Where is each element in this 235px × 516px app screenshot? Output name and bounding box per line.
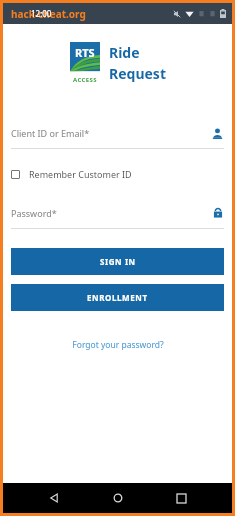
staticText: RTS [75, 45, 95, 60]
staticText: Client ID or Email* [11, 127, 211, 139]
staticText: Ride [109, 43, 140, 62]
button[interactable]: Password* [11, 202, 224, 229]
staticText: Request [109, 64, 166, 83]
button[interactable]: Remember Customer ID [11, 164, 224, 184]
staticText: ACCESS [73, 76, 97, 84]
button[interactable]: Home [105, 485, 131, 511]
staticText: 12:00 [31, 8, 52, 19]
other: Password [212, 207, 224, 219]
staticText: SIGN IN [100, 256, 136, 267]
other: Client ID [211, 127, 224, 140]
staticText: Remember Customer ID [29, 168, 132, 180]
staticText: Password* [11, 207, 212, 219]
button[interactable]: Recents [168, 485, 194, 511]
staticText: ENROLLMENT [87, 292, 148, 303]
button[interactable]: SIGN IN [11, 248, 224, 275]
button[interactable]: Back [41, 485, 67, 511]
button[interactable]: Client ID or Email* [11, 122, 224, 149]
staticText: hack-cheat.org [11, 7, 86, 21]
button[interactable]: ENROLLMENT [11, 284, 224, 311]
button[interactable]: Forgot your password? [68, 335, 168, 355]
